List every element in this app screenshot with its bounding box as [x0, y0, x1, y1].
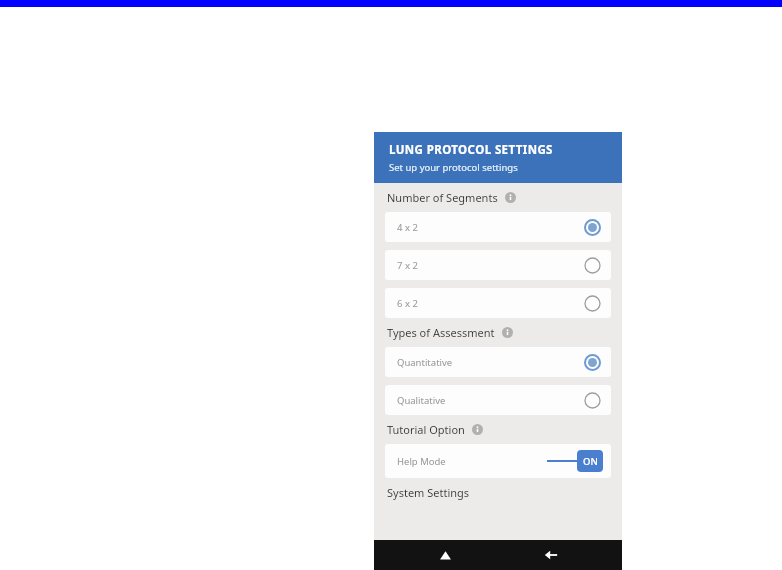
button[interactable]: 7 x 2 — [385, 250, 611, 280]
button[interactable]: Information — [502, 327, 513, 338]
staticText: LUNG PROTOCOL SETTINGS — [389, 142, 553, 158]
staticText: System Settings — [387, 485, 470, 500]
button[interactable]: 4 x 2 — [385, 212, 611, 242]
staticText: 7 x 2 — [397, 259, 418, 272]
staticText: Types of Assessment — [387, 325, 495, 340]
staticText: 4 x 2 — [397, 221, 418, 234]
button[interactable]: 6 x 2 — [385, 288, 611, 318]
button[interactable]: Quantitative — [385, 347, 611, 377]
staticText: Quantitative — [397, 356, 453, 369]
button[interactable]: Back — [536, 540, 566, 570]
staticText: Tutorial Option — [387, 422, 465, 437]
button[interactable]: Help Mode on — [547, 450, 603, 472]
staticText: Set up your protocol settings — [389, 161, 518, 174]
staticText: ON — [583, 455, 598, 468]
button[interactable]: Home — [430, 540, 460, 570]
button[interactable]: Information — [505, 192, 516, 203]
staticText: Help Mode — [397, 455, 446, 468]
button[interactable]: Information — [472, 424, 483, 435]
button[interactable]: Qualitative — [385, 385, 611, 415]
staticText: 6 x 2 — [397, 297, 418, 310]
staticText: Number of Segments — [387, 190, 498, 205]
staticText: Qualitative — [397, 394, 446, 407]
